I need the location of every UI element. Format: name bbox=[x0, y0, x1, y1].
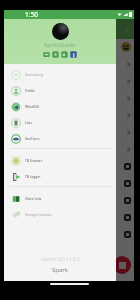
staticText: Spark bbox=[52, 266, 69, 274]
button[interactable]: TB Logger bbox=[4, 169, 116, 185]
button[interactable] bbox=[4, 158, 134, 175]
button[interactable] bbox=[4, 175, 134, 192]
button[interactable]: WherIGO bbox=[4, 99, 116, 115]
button[interactable] bbox=[4, 90, 134, 107]
button[interactable]: Lists bbox=[4, 115, 116, 131]
staticText: Lists bbox=[25, 121, 32, 125]
button[interactable] bbox=[4, 124, 134, 141]
staticText: TB Scanner bbox=[25, 159, 43, 163]
staticText: Share Lists bbox=[25, 197, 42, 201]
button[interactable]: Add bbox=[113, 256, 131, 274]
button[interactable]: social link bbox=[52, 51, 59, 58]
staticText: GeoTours bbox=[25, 137, 40, 141]
staticText: TB Logger bbox=[25, 175, 41, 179]
staticText: WherIGO bbox=[25, 105, 40, 109]
button[interactable]: social link bbox=[70, 51, 77, 58]
button[interactable]: Share Lists bbox=[4, 191, 116, 207]
button[interactable] bbox=[4, 192, 134, 209]
button[interactable]: TB Scanner bbox=[4, 153, 116, 169]
button[interactable] bbox=[4, 107, 134, 124]
button[interactable] bbox=[4, 141, 134, 158]
button[interactable] bbox=[4, 56, 134, 73]
staticText: Profile bbox=[25, 89, 35, 93]
staticText: SpiritGuide bbox=[44, 41, 76, 49]
button[interactable] bbox=[4, 226, 134, 243]
staticText: 1:50 bbox=[25, 10, 38, 19]
button[interactable]: GeoTours bbox=[4, 131, 116, 147]
button[interactable]: Profile bbox=[4, 83, 116, 99]
button[interactable]: social link bbox=[43, 51, 50, 58]
staticText: Manage Counties bbox=[25, 213, 52, 217]
button[interactable]: Geocaching bbox=[4, 67, 116, 83]
button[interactable]: Manage Counties bbox=[4, 207, 116, 223]
staticText: 1:50 bbox=[25, 10, 38, 19]
button[interactable] bbox=[4, 209, 134, 226]
button[interactable]: social link bbox=[61, 51, 68, 58]
staticText: Geocaching bbox=[25, 73, 43, 77]
button[interactable] bbox=[4, 73, 134, 90]
staticText: Geoch GO v1.0.0 bbox=[41, 256, 80, 263]
